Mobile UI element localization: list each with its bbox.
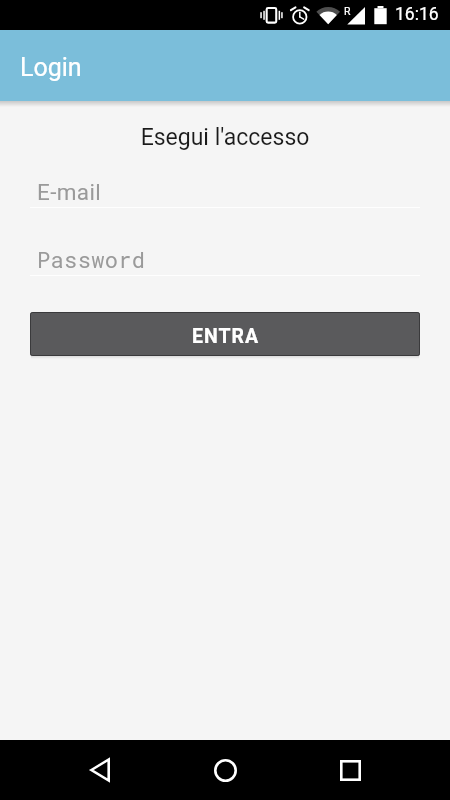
button[interactable]: Back [76,746,124,794]
button[interactable]: E-mail [30,171,420,208]
staticText: R [344,5,351,17]
button[interactable]: Home [201,746,249,794]
button[interactable]: ENTRA [30,312,420,356]
button[interactable]: Password [30,237,420,276]
button[interactable]: Recent apps [326,746,374,794]
staticText: Esegui l'accesso [0,124,450,151]
staticText: Password [37,245,146,274]
staticText: Login [20,53,82,82]
staticText: E-mail [37,179,102,205]
staticText: ENTRA [192,325,260,348]
staticText: 16:16 [395,4,439,25]
